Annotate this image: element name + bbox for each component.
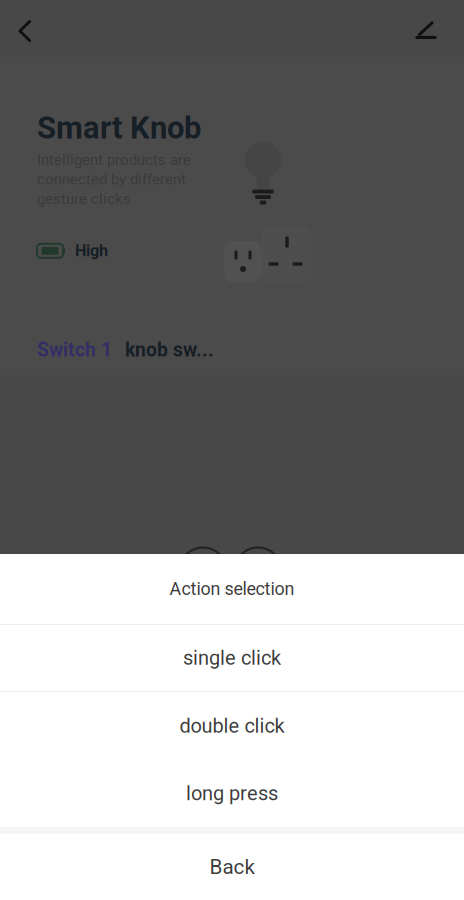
staticText: Action selection — [169, 578, 294, 599]
staticText: gesture clicks — [37, 190, 131, 208]
staticText: connected by different — [37, 171, 186, 188]
button[interactable]: Action selection — [0, 554, 464, 624]
button[interactable]: Back — [0, 834, 464, 900]
staticText: single click — [183, 646, 281, 670]
staticText: Switch 1 — [37, 339, 112, 361]
staticText: Intelligent products are — [37, 151, 191, 169]
staticText: High — [75, 241, 108, 260]
button[interactable]: double click — [0, 692, 464, 760]
button[interactable]: long press — [0, 760, 464, 827]
staticText: Smart Knob — [37, 110, 201, 146]
button[interactable]: Back — [2, 8, 48, 54]
staticText: knob sw... — [125, 339, 214, 361]
button[interactable]: knob sw... — [125, 333, 214, 367]
staticText: Back — [209, 855, 254, 879]
button[interactable]: Edit — [403, 7, 449, 53]
button[interactable]: single click — [0, 625, 464, 691]
staticText: long press — [186, 782, 278, 805]
button[interactable]: Switch 1 — [37, 333, 112, 367]
staticText: double click — [179, 714, 284, 738]
